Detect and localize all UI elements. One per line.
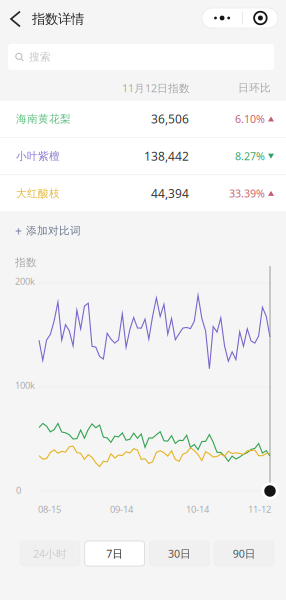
button[interactable]: 海南黄花梨 <box>0 101 286 137</box>
button[interactable]: 30日 <box>149 541 209 566</box>
staticText: 11-12 <box>248 503 271 515</box>
staticText: 7日 <box>106 546 123 561</box>
staticText: 指数详情 <box>32 11 84 27</box>
staticText: 小叶紫檀 <box>16 150 60 163</box>
staticText: 36,506 <box>151 111 189 127</box>
staticText: 30日 <box>168 546 191 561</box>
button[interactable]: Close <box>243 8 278 28</box>
staticText: 24小时 <box>33 546 67 561</box>
button[interactable]: 大红酸枝 <box>0 175 286 212</box>
staticText: + <box>15 223 22 239</box>
staticText: 0 <box>16 484 21 496</box>
staticText: 33.39% <box>229 186 265 200</box>
staticText: 6.10% <box>235 112 265 126</box>
staticText: 大红酸枝 <box>16 187 60 200</box>
button[interactable]: 90日 <box>214 541 274 566</box>
button[interactable]: Back <box>0 0 32 38</box>
staticText: 指数 <box>15 256 37 269</box>
staticText: 10-14 <box>186 503 209 515</box>
staticText: 海南黄花梨 <box>16 112 71 125</box>
staticText: 8.27% <box>235 149 265 163</box>
staticText: 100k <box>15 379 35 391</box>
staticText: 138,442 <box>144 148 189 164</box>
button[interactable]: + <box>0 212 286 249</box>
staticText: 搜索 <box>29 50 51 63</box>
staticText: 44,394 <box>151 185 189 201</box>
staticText: 90日 <box>233 546 256 561</box>
button[interactable]: 7日 <box>85 541 145 566</box>
staticText: 11月12日指数 <box>122 81 190 95</box>
button[interactable]: 小叶紫檀 <box>0 138 286 174</box>
staticText: 09-14 <box>110 503 133 515</box>
staticText: 日环比 <box>238 81 271 94</box>
staticText: 添加对比词 <box>26 224 81 237</box>
button[interactable]: 24小时 <box>20 541 80 566</box>
staticText: 200k <box>15 275 35 287</box>
button[interactable]: 搜索 <box>0 38 286 76</box>
button[interactable]: More <box>202 8 242 28</box>
staticText: 08-15 <box>38 503 61 515</box>
